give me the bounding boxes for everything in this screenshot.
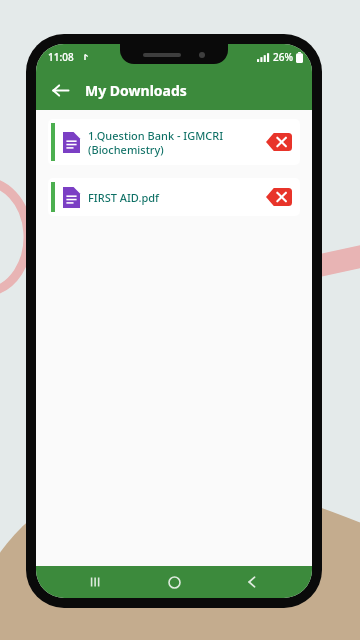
staticText: 11:08 [48,50,74,64]
button[interactable]: Delete [266,188,292,206]
button[interactable]: Back [234,566,270,598]
button[interactable]: Home [156,566,192,598]
staticText: 26% [273,50,293,64]
staticText: FIRST AID.pdf [88,190,160,205]
button[interactable]: Delete [266,133,292,151]
staticText: My Downloads [85,81,187,100]
button[interactable]: Recents [78,566,114,598]
button[interactable]: 1.Question Bank - IGMCRI (Biochemistry) [48,119,300,165]
staticText: 1.Question Bank - IGMCRI (Biochemistry) [88,128,224,157]
button[interactable]: Back [44,74,76,106]
button[interactable]: FIRST AID.pdf [48,178,300,216]
